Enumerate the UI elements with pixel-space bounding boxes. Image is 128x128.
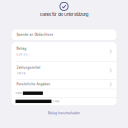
button[interactable]: Spende an Obdachlose <box>11 29 116 40</box>
staticText: Beleg herunterladen <box>48 111 80 115</box>
button[interactable]: Persönliche Angaben <box>11 80 116 89</box>
staticText: Name <box>15 92 21 95</box>
staticText: Spende an Obdachlose <box>16 33 53 36</box>
staticText: Betrag <box>16 47 26 50</box>
staticText: PayPal <box>16 72 25 75</box>
button[interactable]: E-Mail <box>11 98 116 105</box>
staticText: Danke für die Unterstützung <box>40 12 88 17</box>
staticText: Persönliche Angaben <box>16 82 50 86</box>
staticText: EUR 50,– <box>16 53 29 56</box>
button[interactable]: Zahlungsmittel <box>11 61 116 79</box>
staticText: E-Mail <box>53 100 60 103</box>
button[interactable]: Betrag <box>11 42 116 61</box>
staticText: Zahlungsmittel <box>16 66 40 69</box>
button[interactable]: Name <box>11 89 116 97</box>
button[interactable]: Beleg herunterladen <box>0 109 128 117</box>
